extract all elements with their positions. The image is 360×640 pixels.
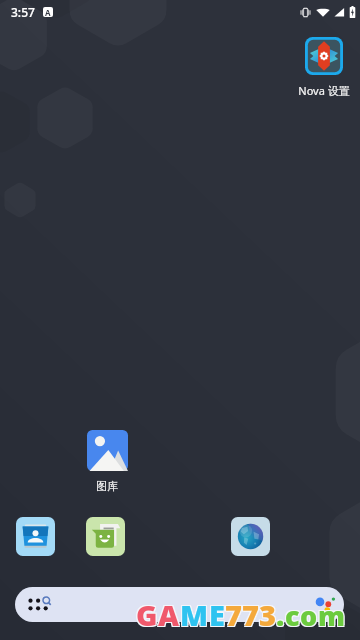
button[interactable]: Browser — [231, 517, 270, 556]
staticText: A — [157, 596, 179, 635]
staticText: c — [284, 598, 299, 635]
staticText: A — [159, 594, 181, 633]
staticText: E — [209, 595, 225, 634]
staticText: 7 — [242, 595, 259, 634]
staticText: A — [45, 7, 51, 17]
staticText: . — [277, 594, 286, 633]
button[interactable]: Nova 设置 — [288, 37, 360, 98]
staticText: m — [319, 596, 346, 633]
button[interactable]: Messaging — [86, 517, 125, 556]
staticText: 3 — [258, 596, 275, 635]
staticText: M — [181, 594, 210, 633]
staticText: m — [319, 598, 346, 635]
staticText: E — [210, 596, 226, 635]
staticText: c — [286, 598, 301, 635]
staticText: 3 — [260, 594, 277, 633]
staticText: 7 — [224, 594, 241, 633]
staticText: o — [301, 598, 319, 635]
staticText: . — [275, 594, 284, 633]
staticText: G — [135, 596, 157, 635]
button[interactable]: Search — [15, 587, 344, 622]
staticText: 7 — [226, 594, 243, 633]
staticText: 7 — [224, 596, 241, 635]
staticText: 3 — [258, 594, 275, 633]
staticText: A — [157, 594, 179, 633]
staticText: G — [136, 595, 158, 634]
staticText: o — [299, 598, 317, 635]
staticText: 7 — [241, 594, 258, 633]
staticText: 7 — [243, 596, 260, 635]
staticText: . — [275, 596, 284, 635]
staticText: G — [135, 594, 157, 633]
staticText: o — [301, 596, 319, 633]
staticText: 7 — [243, 594, 260, 633]
staticText: m — [317, 596, 344, 633]
staticText: M — [180, 595, 209, 634]
staticText: M — [179, 594, 208, 633]
staticText: 3 — [260, 596, 277, 635]
button[interactable]: 图库 — [71, 430, 143, 493]
staticText: 7 — [226, 596, 243, 635]
staticText: c — [285, 597, 300, 634]
staticText: A — [158, 595, 180, 634]
staticText: c — [286, 596, 301, 633]
staticText: 7 — [241, 596, 258, 635]
staticText: G — [137, 594, 159, 633]
staticText: 7 — [225, 595, 242, 634]
staticText: G — [137, 596, 159, 635]
button[interactable]: Contacts — [16, 517, 55, 556]
staticText: E — [208, 594, 224, 633]
staticText: 3:57 — [11, 4, 35, 20]
staticText: c — [284, 596, 299, 633]
staticText: 图库 — [96, 479, 118, 493]
staticText: Nova 设置 — [298, 83, 350, 98]
staticText: o — [299, 596, 317, 633]
staticText: o — [300, 597, 318, 634]
staticText: M — [181, 596, 210, 635]
staticText: E — [208, 596, 224, 635]
staticText: A — [159, 596, 181, 635]
staticText: . — [277, 596, 286, 635]
staticText: E — [210, 594, 226, 633]
staticText: m — [317, 598, 344, 635]
staticText: m — [318, 597, 345, 634]
staticText: . — [276, 595, 285, 634]
staticText: 3 — [259, 595, 276, 634]
staticText: M — [179, 596, 208, 635]
